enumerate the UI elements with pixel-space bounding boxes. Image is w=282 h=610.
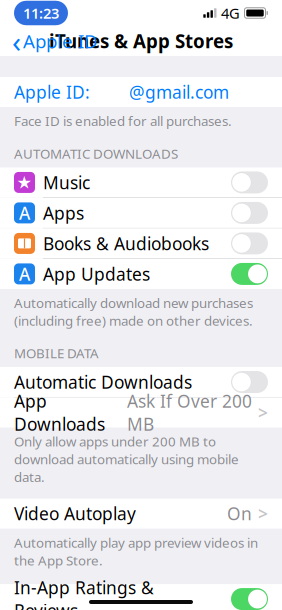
- staticText: Automatically play app preview videos in…: [14, 534, 258, 569]
- staticText: MOBILE DATA: [14, 344, 99, 362]
- staticText: Automatic Downloads: [14, 370, 192, 393]
- staticText: Only allow apps under 200 MB to download…: [14, 432, 239, 486]
- staticText: >: [258, 502, 268, 525]
- staticText: Ask If Over 200 MB: [127, 389, 252, 435]
- staticText: >: [258, 401, 268, 424]
- button[interactable]: Video Autoplay: [0, 499, 282, 529]
- staticText: 11:23: [23, 3, 59, 23]
- button[interactable]: In-App Ratings & Reviews: [0, 584, 282, 610]
- staticText: A: [19, 262, 30, 285]
- staticText: Video Autoplay: [14, 502, 136, 525]
- button[interactable]: ‹: [4, 26, 106, 56]
- button[interactable]: Books & Audiobooks: [0, 228, 282, 258]
- staticText: App Updates: [43, 262, 150, 285]
- staticText: Books & Audiobooks: [43, 232, 209, 255]
- staticText: ★: [16, 173, 32, 192]
- staticText: Automatically download new purchases (in…: [14, 294, 253, 329]
- staticText: On: [227, 502, 252, 525]
- button[interactable]: App Downloads: [0, 397, 282, 427]
- staticText: Apps: [43, 201, 84, 224]
- staticText: Apple ID:: [14, 80, 90, 103]
- staticText: Apple ID: [23, 29, 98, 53]
- button[interactable]: ★: [0, 167, 282, 197]
- staticText: AUTOMATIC DOWNLOADS: [14, 145, 178, 162]
- button[interactable]: Apple ID:: [0, 77, 282, 107]
- button[interactable]: A: [0, 259, 282, 289]
- button[interactable]: Automatic Downloads: [0, 367, 282, 397]
- staticText: A: [19, 201, 30, 224]
- staticText: In-App Ratings & Reviews: [14, 576, 154, 610]
- staticText: Face ID is enabled for all purchases.: [14, 112, 232, 130]
- staticText: ‹: [12, 21, 21, 60]
- staticText: Music: [43, 171, 90, 194]
- staticText: @gmail.com: [129, 80, 229, 103]
- button[interactable]: A: [0, 198, 282, 228]
- staticText: App Downloads: [14, 389, 105, 435]
- staticText: iTunes & App Stores: [49, 29, 233, 53]
- staticText: 4G: [221, 3, 240, 23]
